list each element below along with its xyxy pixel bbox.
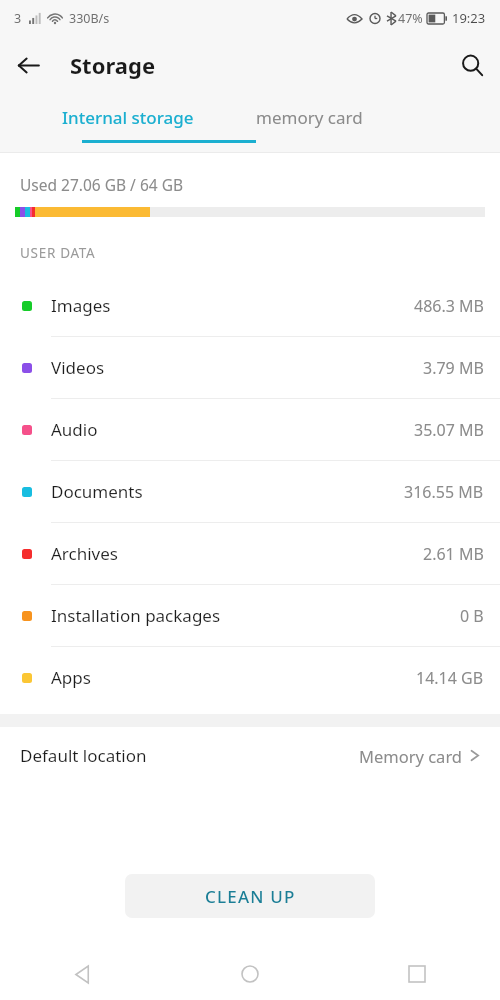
button[interactable]: Archives — [0, 523, 500, 584]
staticText: Documents — [51, 480, 143, 503]
staticText: USER DATA — [20, 244, 96, 262]
staticText: Internal storage — [62, 106, 194, 129]
staticText: Memory card — [359, 745, 463, 767]
staticText: Archives — [51, 542, 118, 565]
staticText: Default location — [20, 744, 147, 767]
staticText: memory card — [256, 106, 363, 129]
button[interactable]: memory card — [256, 93, 500, 152]
staticText: 0 B — [460, 605, 484, 627]
button[interactable]: Internal storage — [0, 93, 256, 152]
button[interactable]: Recents — [333, 948, 500, 1000]
button[interactable]: Default location — [0, 727, 500, 784]
button[interactable]: Back — [0, 37, 56, 93]
staticText: 3.79 MB — [423, 357, 484, 379]
button[interactable]: Apps — [0, 647, 500, 708]
staticText: 19:23 — [452, 9, 486, 27]
staticText: Storage — [70, 50, 156, 80]
staticText: Used 27.06 GB / 64 GB — [20, 174, 184, 195]
button[interactable]: Documents — [0, 461, 500, 522]
button[interactable]: CLEAN UP — [125, 874, 375, 918]
button[interactable]: Back — [0, 948, 166, 1000]
staticText: 35.07 MB — [414, 419, 484, 441]
button[interactable]: Search — [444, 37, 500, 93]
staticText: Videos — [51, 356, 105, 379]
button[interactable]: Videos — [0, 337, 500, 398]
staticText: 3 — [14, 10, 22, 27]
staticText: Images — [51, 294, 111, 317]
staticText: 14.14 GB — [416, 667, 484, 689]
staticText: CLEAN UP — [205, 885, 296, 908]
staticText: 486.3 MB — [414, 295, 484, 317]
staticText: 47% — [398, 10, 423, 27]
button[interactable]: Home — [166, 948, 333, 1000]
staticText: 2.61 MB — [423, 543, 484, 565]
button[interactable]: Audio — [0, 399, 500, 460]
button[interactable]: Images — [0, 275, 500, 336]
staticText: 316.55 MB — [404, 481, 484, 503]
staticText: Installation packages — [51, 604, 221, 627]
staticText: Apps — [51, 666, 91, 689]
staticText: 330B/s — [69, 10, 110, 27]
button[interactable]: Installation packages — [0, 585, 500, 646]
staticText: Audio — [51, 418, 98, 441]
